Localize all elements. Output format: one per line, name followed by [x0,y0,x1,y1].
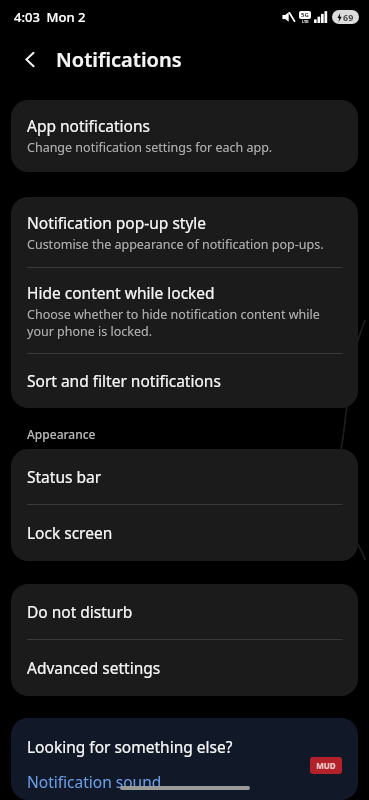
button[interactable]: Notification pop-up style [11,197,358,267]
staticText: Choose whether to hide notification cont… [27,306,342,339]
staticText: 69 [343,11,354,23]
button[interactable]: Back [14,43,46,75]
staticText: Lock screen [27,522,113,543]
staticText: Notification pop-up style [27,212,207,233]
staticText: LTE [302,19,309,24]
staticText: Customise the appearance of notification… [27,236,324,253]
staticText: Notifications [56,46,182,73]
staticText: Change notification settings for each ap… [27,139,273,156]
staticText: Appearance [27,426,96,442]
staticText: MUD [316,760,336,771]
button[interactable]: Sort and filter notifications [11,354,358,408]
button[interactable]: App notifications [11,100,358,172]
staticText: Hide content while locked [27,282,215,303]
staticText: 4:03 Mon 2 [14,8,86,26]
staticText: 5G [301,11,309,19]
button[interactable]: Advanced settings [11,640,358,696]
staticText: App notifications [27,115,150,136]
button[interactable]: Hide content while locked [11,268,358,353]
button[interactable]: Do not disturb [11,584,358,639]
button[interactable]: Lock screen [11,505,358,561]
staticText: Status bar [27,466,102,487]
staticText: Sort and filter notifications [27,370,221,391]
staticText: Looking for something else? [27,736,233,757]
staticText: Do not disturb [27,601,133,622]
staticText: Advanced settings [27,657,161,678]
button[interactable]: Notification sound [11,771,358,792]
staticText: Notification sound [27,771,162,792]
button[interactable]: Status bar [11,449,358,504]
